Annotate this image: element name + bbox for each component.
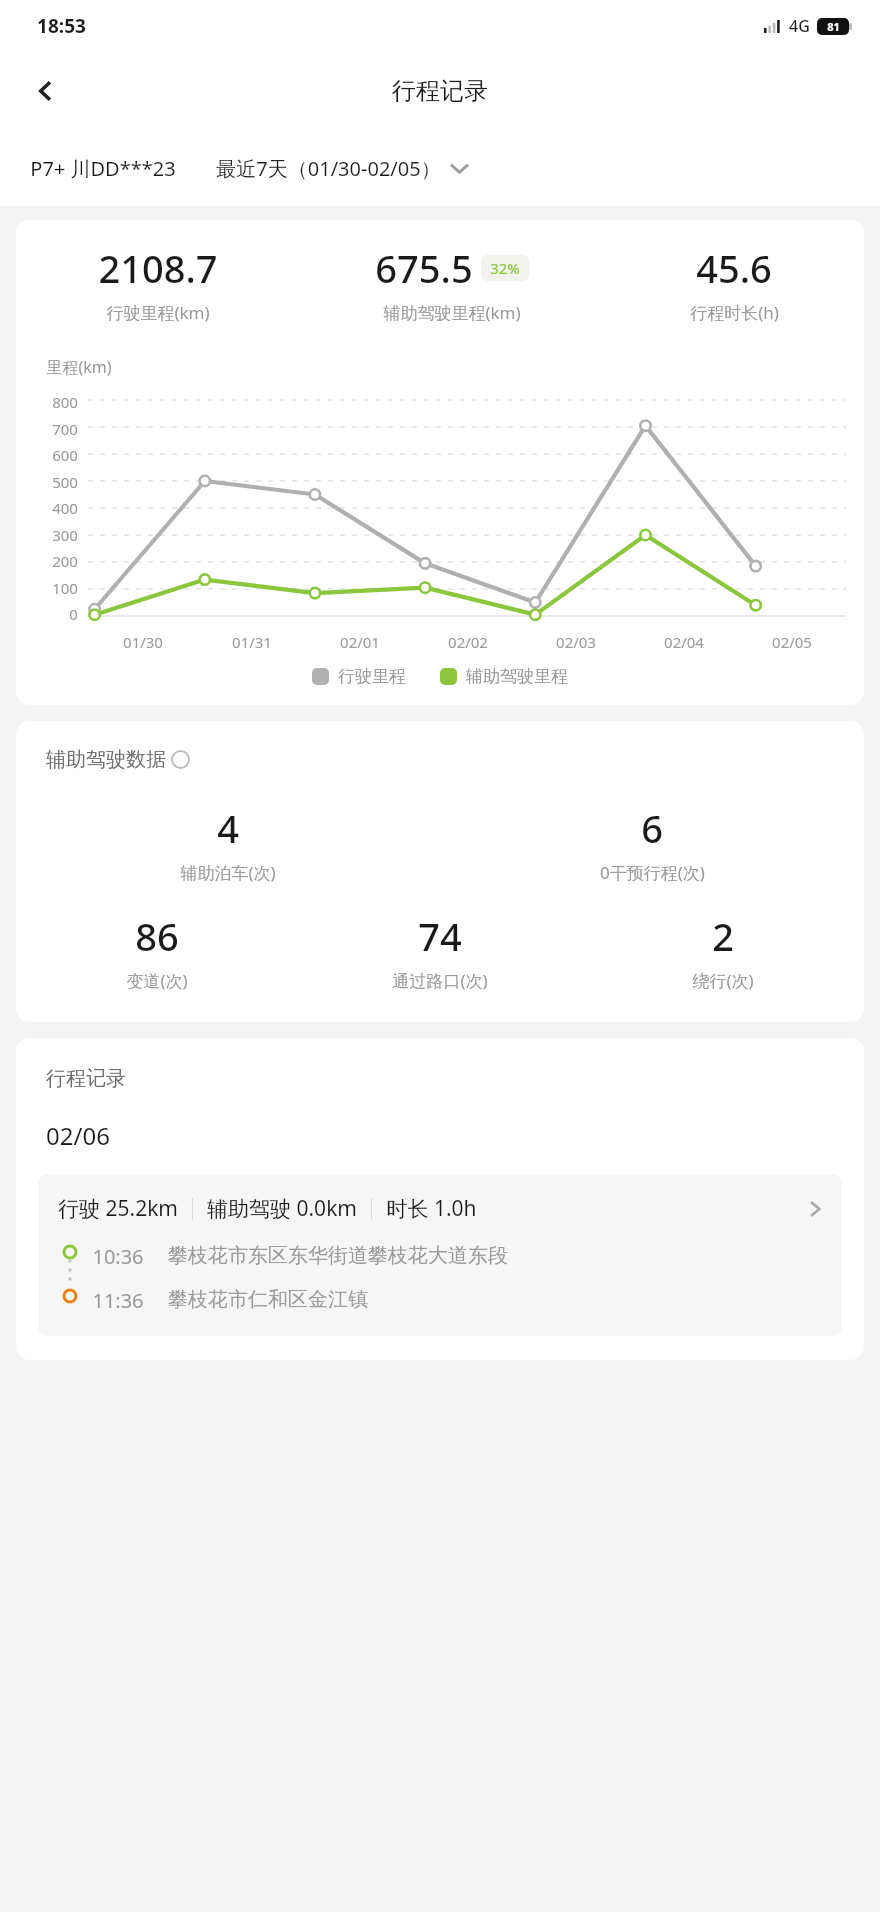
staticText: 02/04 — [664, 632, 704, 652]
staticText: P7+ 川DD***23 — [30, 155, 176, 182]
button[interactable]: 行驶 25.2km — [38, 1174, 842, 1336]
staticText: 81 — [827, 19, 840, 34]
button[interactable]: 辅助驾驶数据 — [46, 747, 190, 772]
staticText: 10:36 — [92, 1243, 144, 1270]
staticText: 辅助驾驶 0.0km — [207, 1194, 357, 1223]
staticText: 100 — [52, 578, 78, 598]
staticText: 绕行(次) — [692, 969, 754, 992]
staticText: 攀枝花市仁和区金江镇 — [168, 1287, 368, 1312]
staticText: 45.6 — [696, 242, 772, 294]
staticText: 行程时长(h) — [690, 301, 779, 324]
staticText: 02/02 — [448, 632, 488, 652]
staticText: 时长 1.0h — [386, 1194, 477, 1223]
staticText: 通过路口(次) — [392, 969, 488, 992]
staticText: 里程(km) — [46, 356, 112, 378]
staticText: 变道(次) — [126, 969, 188, 992]
staticText: 300 — [52, 525, 78, 545]
staticText: 32% — [490, 258, 520, 278]
staticText: 700 — [52, 419, 78, 439]
staticText: 200 — [52, 551, 78, 571]
staticText: 18:53 — [37, 13, 86, 39]
staticText: 行程记录 — [46, 1066, 126, 1091]
button[interactable]: 最近7天（01/30-02/05） — [216, 155, 468, 182]
staticText: 2108.7 — [98, 242, 218, 294]
staticText: 02/03 — [556, 632, 596, 652]
staticText: 11:36 — [92, 1287, 144, 1314]
staticText: 攀枝花市东区东华街道攀枝花大道东段 — [168, 1243, 508, 1268]
staticText: 500 — [52, 472, 78, 492]
staticText: 02/01 — [340, 632, 380, 652]
staticText: 辅助驾驶里程(km) — [383, 301, 521, 324]
staticText: 02/06 — [46, 1119, 110, 1152]
staticText: 800 — [52, 392, 78, 412]
staticText: 01/30 — [123, 632, 163, 652]
staticText: 行驶里程 — [338, 666, 406, 687]
staticText: 600 — [52, 445, 78, 465]
staticText: 86 — [135, 910, 179, 962]
staticText: 400 — [52, 498, 78, 518]
staticText: 0干预行程(次) — [600, 861, 705, 884]
staticText: 行驶里程(km) — [106, 301, 210, 324]
staticText: 675.5 — [375, 242, 473, 294]
staticText: 最近7天（01/30-02/05） — [216, 155, 441, 182]
staticText: 辅助驾驶里程 — [466, 666, 568, 687]
staticText: 0 — [69, 604, 78, 624]
button[interactable]: Back — [22, 67, 70, 115]
staticText: 行程记录 — [392, 76, 488, 106]
staticText: 02/05 — [772, 632, 812, 652]
staticText: 辅助驾驶数据 — [46, 747, 166, 772]
staticText: 辅助泊车(次) — [180, 861, 276, 884]
staticText: 01/31 — [232, 632, 272, 652]
staticText: 4 — [217, 802, 239, 854]
staticText: 74 — [418, 910, 462, 962]
staticText: 4G — [789, 15, 810, 37]
staticText: 2 — [712, 910, 734, 962]
staticText: 6 — [641, 802, 663, 854]
staticText: 行驶 25.2km — [58, 1194, 178, 1223]
